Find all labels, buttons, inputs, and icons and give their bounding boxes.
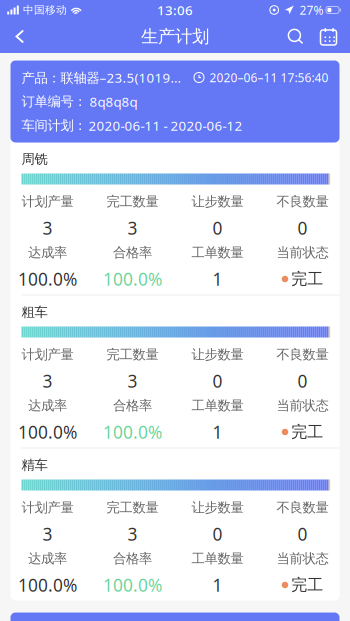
staticText: 2020–06–11 17:56:40 <box>209 69 328 85</box>
staticText: 0 <box>212 216 222 239</box>
staticText: 工单数量 <box>191 244 243 261</box>
button[interactable]: Search <box>279 20 312 53</box>
staticText: 完工数量 <box>106 346 158 363</box>
staticText: 计划产量 <box>21 193 73 210</box>
staticText: 达成率 <box>28 397 67 414</box>
staticText: 工单数量 <box>191 397 243 414</box>
staticText: 13:06 <box>157 1 193 19</box>
staticText: 0 <box>297 216 307 239</box>
staticText: 100.0% <box>18 420 77 443</box>
staticText: 粗车 <box>21 304 47 320</box>
staticText: 精车 <box>21 457 47 473</box>
staticText: 1 <box>212 573 222 596</box>
staticText: 周铣 <box>21 151 47 167</box>
staticText: 27% <box>299 2 323 18</box>
staticText: 合格率 <box>113 550 152 567</box>
staticText: 订单编号： <box>21 93 86 110</box>
staticText: 0 <box>297 522 307 545</box>
staticText: 3 <box>42 369 52 392</box>
staticText: 0 <box>212 369 222 392</box>
staticText: 完工数量 <box>106 499 158 516</box>
staticText: 产品：联轴器–23.5(1019… <box>21 69 181 86</box>
staticText: 合格率 <box>113 244 152 261</box>
staticText: 100.0% <box>18 267 77 290</box>
staticText: 8q8q8q <box>86 93 137 110</box>
staticText: 车间计划： <box>21 117 86 134</box>
staticText: 工单数量 <box>191 550 243 567</box>
staticText: 计划产量 <box>21 346 73 363</box>
staticText: 2020-06-11 - 2020-06-12 <box>88 117 242 134</box>
staticText: 中国移动 <box>23 3 67 16</box>
staticText: 让步数量 <box>191 346 243 363</box>
staticText: 1 <box>212 420 222 443</box>
staticText: 计划产量 <box>21 499 73 516</box>
staticText: 完工 <box>291 269 323 289</box>
staticText: 达成率 <box>28 244 67 261</box>
staticText: 完工 <box>291 422 323 442</box>
staticText: 让步数量 <box>191 193 243 210</box>
staticText: 当前状态 <box>276 397 328 414</box>
staticText: 0 <box>297 369 307 392</box>
staticText: 合格率 <box>113 397 152 414</box>
staticText: 100.0% <box>103 573 162 596</box>
button[interactable]: Back <box>3 20 37 53</box>
staticText: 3 <box>127 216 137 239</box>
staticText: 3 <box>127 522 137 545</box>
staticText: 100.0% <box>103 267 162 290</box>
staticText: 1 <box>212 267 222 290</box>
staticText: 让步数量 <box>191 499 243 516</box>
staticText: 3 <box>127 369 137 392</box>
staticText: 0 <box>212 522 222 545</box>
staticText: 完工数量 <box>106 193 158 210</box>
staticText: 不良数量 <box>276 346 328 363</box>
staticText: 3 <box>42 522 52 545</box>
staticText: 100.0% <box>103 420 162 443</box>
staticText: 100.0% <box>18 573 77 596</box>
staticText: 达成率 <box>28 550 67 567</box>
button[interactable]: Calendar <box>312 20 345 53</box>
staticText: 当前状态 <box>276 550 328 567</box>
staticText: 3 <box>42 216 52 239</box>
staticText: 生产计划 <box>141 26 209 47</box>
staticText: 不良数量 <box>276 193 328 210</box>
staticText: 当前状态 <box>276 244 328 261</box>
staticText: 不良数量 <box>276 499 328 516</box>
staticText: 完工 <box>291 575 323 595</box>
